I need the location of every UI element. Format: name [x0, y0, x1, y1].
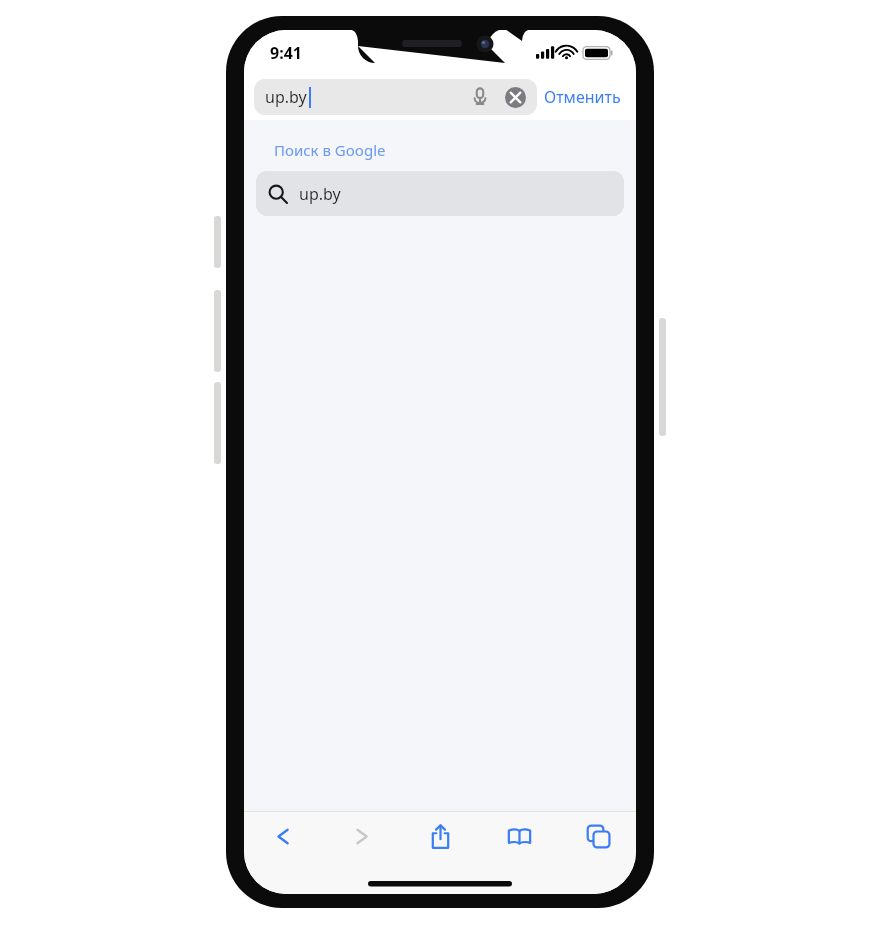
- staticText: Поиск в Google: [274, 140, 386, 160]
- staticText: Отменить: [544, 86, 621, 108]
- button[interactable]: Tabs: [570, 812, 626, 860]
- staticText: up.by: [299, 183, 341, 205]
- staticText: 9:41: [270, 42, 302, 64]
- button[interactable]: Bookmarks: [491, 812, 547, 860]
- button[interactable]: up.by: [256, 171, 624, 216]
- button[interactable]: Voice search: [468, 85, 492, 109]
- button[interactable]: up.by: [254, 79, 537, 115]
- button[interactable]: Back: [254, 812, 310, 860]
- button[interactable]: Отменить: [537, 81, 628, 113]
- button[interactable]: Forward: [333, 812, 389, 860]
- staticText: up.by: [265, 86, 307, 108]
- button[interactable]: Share: [412, 812, 468, 860]
- button[interactable]: Clear text: [505, 87, 526, 108]
